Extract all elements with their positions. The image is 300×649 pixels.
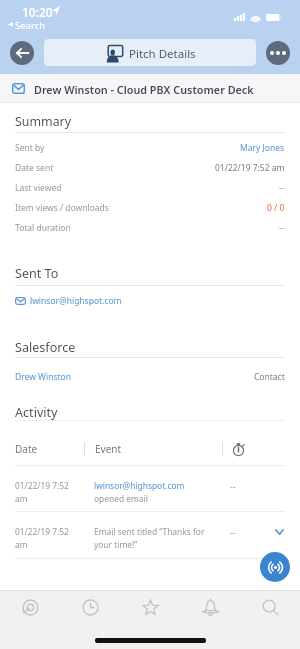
staticText: lwinsor@highspot.com [30,295,122,307]
staticText: Drew Winston [15,371,71,383]
button[interactable]: Live broadcast [260,552,290,582]
staticText: Activity [15,404,58,421]
staticText: -- [279,222,285,234]
staticText: Date sent [15,162,54,174]
button[interactable]: 01/22/19 7:52 [0,523,300,561]
staticText: 01/22/19 7:52 [15,526,69,537]
button[interactable]: Recent [60,591,120,624]
staticText: opened email [94,493,148,504]
staticText: am [15,539,28,550]
staticText: Total duration [15,222,71,234]
staticText: 01/22/19 7:52 am [215,162,285,174]
staticText: Sent To [15,265,59,282]
button[interactable]: Spotlight [0,591,60,624]
staticText: Last viewed [15,182,62,194]
staticText: Drew Winston - Cloud PBX Customer Deck [34,82,254,97]
staticText: lwinsor@highspot.com [94,480,185,491]
button[interactable]: lwinsor@highspot.com [15,293,122,309]
staticText: Date [15,442,38,456]
staticText: Sent by [15,142,45,154]
button[interactable]: 01/22/19 7:52 [0,477,300,515]
button[interactable]: Favorites [120,591,180,624]
staticText: Summary [15,113,72,130]
staticText: -- [230,527,236,538]
button[interactable] [44,39,256,66]
button[interactable]: Search [240,591,300,624]
button[interactable]: Notifications [180,591,240,624]
staticText: 10:20 [22,4,53,20]
staticText: 0 / 0 [267,202,285,214]
staticText: your time!” [94,539,138,550]
button[interactable]: More options [266,41,290,65]
staticText: Pitch Details [129,46,196,62]
staticText: Contact [254,371,285,383]
staticText: 01/22/19 7:52 [15,480,69,491]
staticText: Mary Jones [240,142,285,154]
staticText: Event [95,442,122,456]
staticText: Email sent titled “Thanks for [94,526,205,537]
staticText: -- [230,481,236,492]
button[interactable]: Drew Winston [0,369,300,385]
staticText: Search [15,19,46,32]
button[interactable]: Back [10,41,34,65]
staticText: -- [279,182,285,194]
staticText: am [15,493,28,504]
staticText: Item views / downloads [15,202,109,214]
staticText: Salesforce [15,339,76,356]
